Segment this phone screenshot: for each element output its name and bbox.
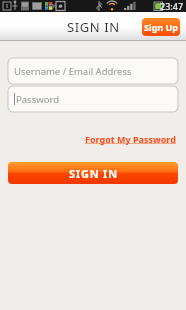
staticText: 64% [45,2,57,10]
staticText: 23:47 [160,0,184,12]
button[interactable]: Password [8,86,178,112]
button[interactable]: Username / Email Address [8,58,178,84]
staticText: SIGN IN [67,18,120,36]
staticText: Username / Email Address [14,65,132,78]
staticText: Password [16,93,59,106]
staticText: Sign Up [144,21,179,33]
button[interactable]: SIGN IN [8,162,178,184]
button[interactable]: Forgot My Password [83,131,178,147]
staticText: SIGN IN [69,166,118,181]
staticText: Forgot My Password [85,133,176,145]
button[interactable]: Sign Up [142,18,180,36]
